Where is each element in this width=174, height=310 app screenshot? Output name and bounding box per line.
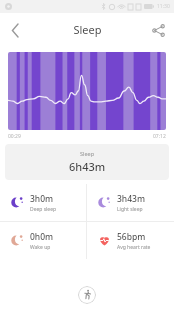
staticText: 3h43m — [117, 193, 145, 205]
button[interactable]: 56bpm — [87, 222, 174, 259]
staticText: 07:12 — [153, 133, 166, 140]
staticText: 0h0m — [30, 231, 54, 243]
button[interactable]: 3h0m — [0, 184, 86, 221]
button[interactable]: 0h0m — [0, 222, 86, 259]
staticText: 3h0m — [30, 193, 54, 205]
staticText: 00:29 — [8, 133, 21, 140]
staticText: Avg heart rate — [117, 244, 151, 251]
button[interactable]: Share — [145, 17, 171, 43]
button[interactable]: 3h43m — [87, 184, 174, 221]
staticText: 11:30 — [157, 3, 170, 10]
button[interactable]: Sleep — [5, 144, 169, 180]
staticText: Wake up — [30, 244, 51, 251]
staticText: Deep sleep — [30, 206, 57, 213]
staticText: 6h43m — [69, 159, 106, 174]
staticText: 56bpm — [117, 231, 146, 243]
button[interactable]: Back — [2, 17, 28, 43]
staticText: Sleep — [73, 22, 102, 37]
button[interactable]: Start activity — [78, 286, 96, 304]
staticText: Light sleep — [117, 206, 143, 213]
staticText: Sleep — [80, 150, 95, 157]
